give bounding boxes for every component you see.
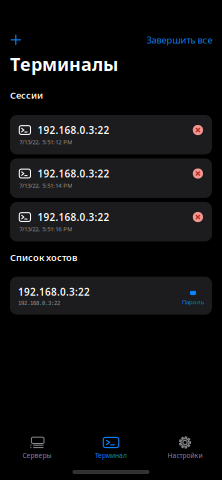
staticText: Пароль <box>182 298 204 306</box>
button[interactable]: New session <box>6 30 26 50</box>
staticText: Сессии <box>10 89 43 101</box>
button[interactable]: 192.168.0.3:22 <box>10 115 212 154</box>
staticText: 192.168.0.3:22 <box>37 210 109 224</box>
staticText: Терминал <box>95 451 127 460</box>
staticText: 7/13/22, 5:51:16 PM <box>19 225 72 233</box>
button[interactable]: 192.168.0.3:22 <box>10 158 212 198</box>
staticText: 7/13/22, 5:51:14 PM <box>19 181 72 190</box>
staticText: 192.168.0.3:22 <box>37 167 109 180</box>
staticText: Список хостов <box>10 251 77 264</box>
button[interactable]: Терминал <box>74 430 148 465</box>
staticText: 192.168.0.3:22 <box>18 300 60 306</box>
button[interactable]: Завершить все <box>142 29 216 50</box>
button[interactable]: Серверы <box>0 430 74 465</box>
staticText: 7/13/22, 5:51:12 PM <box>19 138 72 146</box>
staticText: Терминалы <box>10 52 118 76</box>
staticText: Завершить все <box>146 33 212 46</box>
button[interactable]: Настройки <box>148 430 222 465</box>
button[interactable]: 192.168.0.3:22 <box>10 202 212 241</box>
staticText: Серверы <box>22 451 51 460</box>
staticText: 192.168.0.3:22 <box>37 123 109 137</box>
staticText: 192.168.0.3:22 <box>18 285 90 299</box>
button[interactable]: 192.168.0.3:22 <box>10 277 212 315</box>
staticText: Настройки <box>167 451 202 460</box>
